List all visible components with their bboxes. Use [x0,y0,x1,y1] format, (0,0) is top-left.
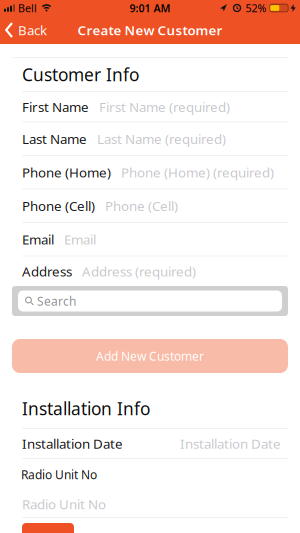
button[interactable]: Phone (Home) [0,156,300,188]
staticText: Bell [18,1,37,15]
button[interactable]: Search [0,286,300,316]
staticText: Address (required) [82,262,196,280]
staticText: Radio Unit No [21,466,97,482]
staticText: Customer Info [22,63,139,86]
button[interactable]: Email [0,223,300,255]
button[interactable]: Add New Customer [0,339,300,373]
button[interactable]: First Name [0,92,300,121]
staticText: Address [22,262,72,280]
button[interactable]: Back [0,21,47,39]
staticText: Search [37,293,76,309]
staticText: Back [18,21,47,39]
staticText: Installation Date [180,435,281,452]
button[interactable]: Scan [22,523,74,533]
staticText: Email [22,230,54,248]
staticText: Phone (Home) [22,163,111,181]
button[interactable]: Radio Unit No [0,496,300,512]
staticText: Phone (Home) (required) [121,163,274,181]
staticText: First Name [22,98,89,116]
button[interactable]: Last Name [0,122,300,155]
staticText: 9:01 AM [129,1,170,15]
staticText: Radio Unit No [22,495,106,513]
button[interactable]: Installation Date [0,429,300,458]
staticText: Create New Customer [77,21,222,39]
staticText: Phone (Cell) [22,197,95,215]
staticText: Installation Date [22,435,123,452]
button[interactable]: Phone (Cell) [0,189,300,222]
staticText: Installation Info [22,397,150,420]
button[interactable]: Address [0,256,300,286]
staticText: Email [64,230,96,248]
staticText: 52% [245,1,266,15]
staticText: Phone (Cell) [105,197,178,215]
staticText: First Name (required) [99,98,230,116]
staticText: Last Name [22,130,87,148]
staticText: Add New Customer [96,348,204,364]
staticText: Last Name (required) [97,130,226,148]
